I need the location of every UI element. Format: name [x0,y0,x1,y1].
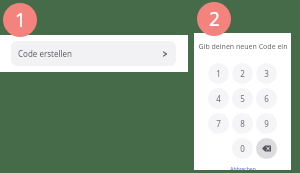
button[interactable]: 5 [232,88,253,109]
staticText: 4 [216,93,221,104]
staticText: 3 [264,68,269,79]
button[interactable]: 7 [208,113,229,134]
button[interactable]: 1 [208,63,229,84]
button[interactable]: Abbrechen [230,166,256,170]
staticText: 9 [264,118,269,129]
staticText: 0 [240,143,245,154]
button[interactable]: 8 [232,113,253,134]
staticText: 1 [216,68,221,79]
staticText: 1 [15,7,26,33]
staticText: 6 [264,93,269,104]
button[interactable]: 9 [256,113,277,134]
staticText: 2 [209,6,220,32]
staticText: 8 [240,118,245,129]
button[interactable]: 2 [232,63,253,84]
staticText: Abbrechen [230,166,256,170]
staticText: Gib deinen neuen Code ein [198,42,288,52]
button[interactable]: Löschen [256,138,277,159]
staticText: 5 [240,93,245,104]
button[interactable]: 6 [256,88,277,109]
button[interactable]: 3 [256,63,277,84]
staticText: 7 [216,118,221,129]
button[interactable]: Code erstellen [11,41,176,66]
button[interactable]: 4 [208,88,229,109]
button[interactable]: 0 [232,138,253,159]
staticText: 2 [240,68,245,79]
staticText: Code erstellen [18,48,73,59]
